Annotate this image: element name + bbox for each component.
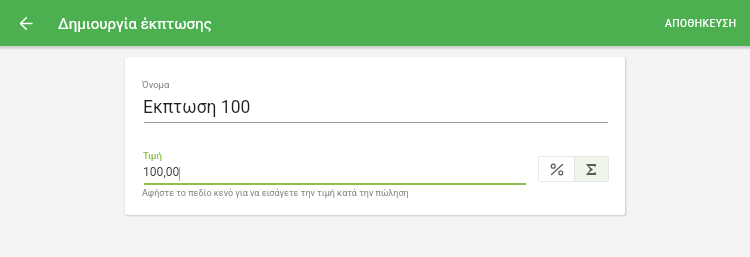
staticText: Αφήστε το πεδίο κενό για να εισάγετε την… bbox=[142, 188, 409, 199]
staticText: Εκπτωση 100 bbox=[143, 97, 251, 118]
staticText: Όνομα bbox=[142, 79, 170, 90]
staticText: ΑΠΟΘΗΚΕΥΣΗ bbox=[665, 18, 737, 30]
button[interactable]: ΑΠΟΘΗΚΕΥΣΗ bbox=[650, 7, 750, 39]
button[interactable]: Fixed amount bbox=[575, 157, 608, 181]
button[interactable] bbox=[142, 75, 608, 123]
button[interactable]: Back bbox=[13, 10, 39, 36]
staticText: Δημιουργία έκπτωσης bbox=[58, 15, 212, 33]
staticText: 100,00 bbox=[143, 165, 180, 179]
button[interactable]: Percent discount bbox=[539, 157, 574, 181]
staticText: Τιμή bbox=[143, 150, 162, 161]
button[interactable] bbox=[142, 147, 526, 185]
